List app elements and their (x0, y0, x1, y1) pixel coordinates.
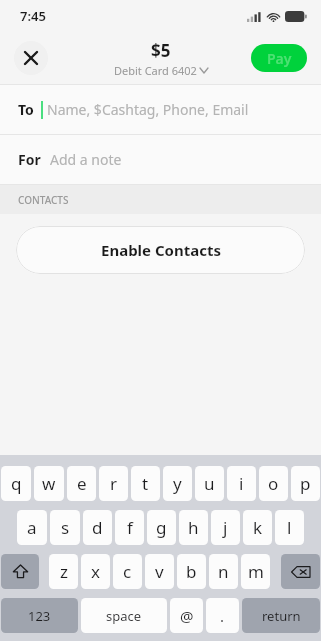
staticText: b (186, 560, 197, 583)
staticText: r (110, 472, 118, 495)
staticText: s (61, 516, 70, 539)
staticText: e (77, 472, 87, 495)
button[interactable]: For (0, 135, 321, 184)
button[interactable]: g (147, 510, 176, 545)
button[interactable]: To (0, 85, 321, 134)
staticText: $5 (151, 39, 171, 62)
button[interactable]: 123 (1, 598, 78, 633)
staticText: h (188, 516, 199, 539)
staticText: m (248, 560, 264, 583)
staticText: n (218, 560, 229, 583)
button[interactable]: e (67, 466, 96, 501)
button[interactable]: l (275, 510, 304, 545)
staticText: a (27, 516, 37, 539)
button[interactable]: @ (170, 598, 203, 633)
staticText: k (253, 516, 263, 539)
button[interactable]: o (259, 466, 288, 501)
staticText: CONTACTS (18, 193, 69, 207)
button[interactable]: k (243, 510, 272, 545)
staticText: Add a note (50, 150, 122, 169)
button[interactable]: q (1, 466, 31, 501)
staticText: f (127, 516, 133, 539)
button[interactable]: d (83, 510, 112, 545)
button[interactable]: a (17, 510, 47, 545)
button[interactable]: y (163, 466, 192, 501)
staticText: z (60, 560, 68, 583)
button[interactable]: t (131, 466, 160, 501)
staticText: v (155, 560, 164, 583)
staticText: x (91, 560, 100, 583)
staticText: o (268, 472, 279, 495)
staticText: i (239, 472, 244, 495)
staticText: Name, $Cashtag, Phone, Email (47, 100, 249, 119)
button[interactable]: Shift (1, 554, 39, 589)
staticText: For (18, 150, 41, 169)
staticText: d (92, 516, 103, 539)
button[interactable]: Pay (251, 44, 307, 72)
staticText: @ (180, 606, 194, 626)
button[interactable]: p (291, 466, 320, 501)
button[interactable]: n (209, 554, 238, 589)
button[interactable]: Enable Contacts (16, 226, 305, 274)
button[interactable]: $5 (114, 39, 208, 78)
staticText: w (42, 472, 56, 495)
staticText: 123 (28, 607, 51, 625)
staticText: g (156, 516, 167, 539)
button[interactable]: h (179, 510, 208, 545)
button[interactable]: Close (14, 41, 48, 75)
staticText: return (262, 607, 301, 625)
staticText: t (142, 472, 149, 495)
button[interactable]: space (81, 598, 167, 633)
button[interactable]: u (195, 466, 224, 501)
button[interactable]: w (34, 466, 64, 501)
staticText: Debit Card 6402 (114, 63, 197, 78)
button[interactable]: f (115, 510, 144, 545)
staticText: c (123, 560, 132, 583)
button[interactable]: r (99, 466, 128, 501)
staticText: space (106, 607, 142, 625)
button[interactable]: c (113, 554, 142, 589)
button[interactable]: s (50, 510, 80, 545)
button[interactable]: z (49, 554, 78, 589)
button[interactable]: j (211, 510, 240, 545)
button[interactable]: Backspace (281, 554, 320, 589)
staticText: u (204, 472, 215, 495)
button[interactable]: v (145, 554, 174, 589)
staticText: j (223, 516, 228, 539)
staticText: p (300, 472, 311, 495)
staticText: y (173, 472, 182, 495)
staticText: q (11, 472, 22, 495)
staticText: To (18, 100, 34, 119)
staticText: Enable Contacts (101, 240, 221, 260)
staticText: 7:45 (20, 7, 46, 25)
button[interactable]: i (227, 466, 256, 501)
button[interactable]: x (81, 554, 110, 589)
button[interactable]: return (242, 598, 320, 633)
staticText: Pay (267, 49, 292, 68)
button[interactable]: . (206, 598, 239, 633)
staticText: . (220, 606, 225, 626)
button[interactable]: b (177, 554, 206, 589)
button[interactable]: m (241, 554, 270, 589)
staticText: l (287, 516, 292, 539)
